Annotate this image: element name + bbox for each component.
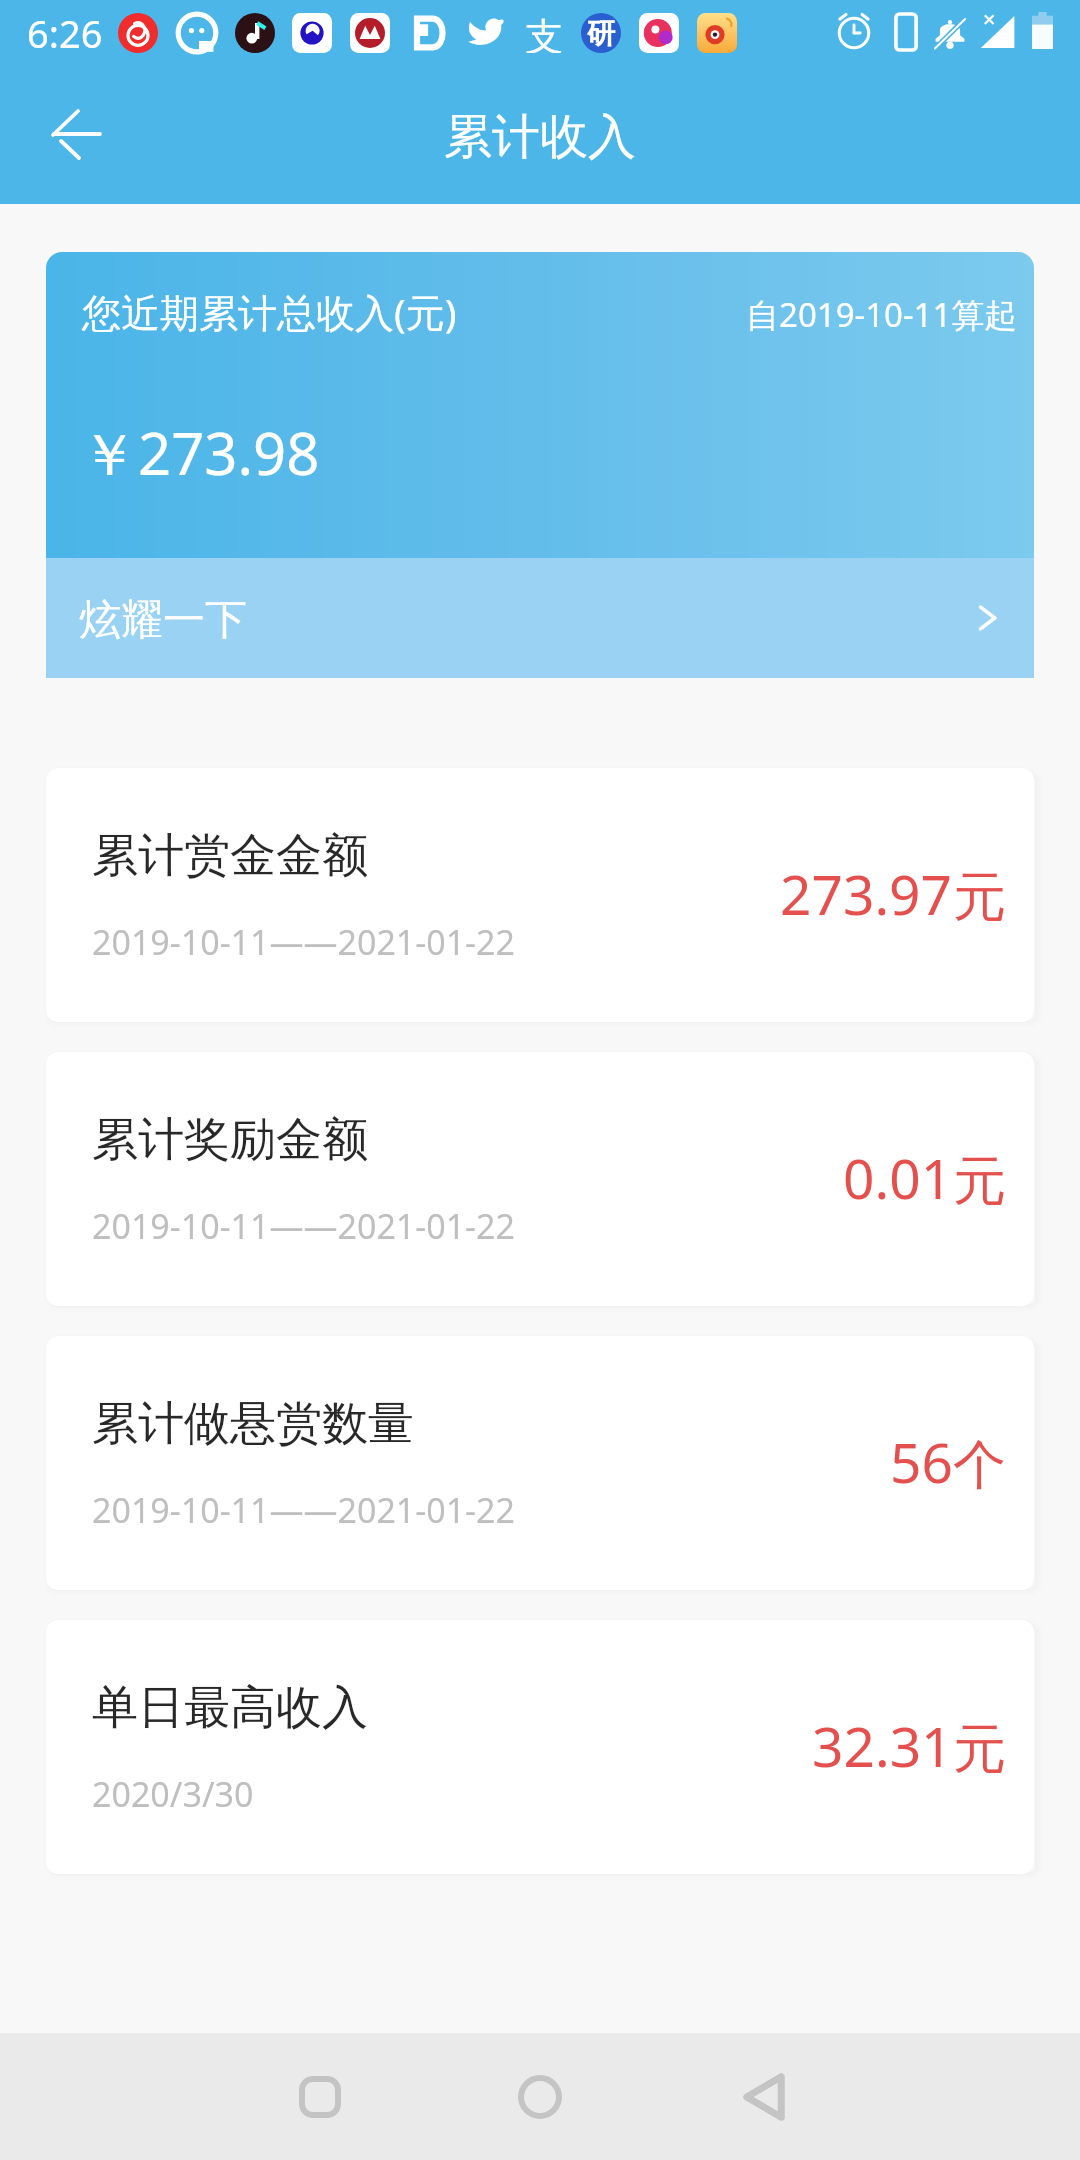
- staticText: ￥273.98: [80, 413, 320, 492]
- button[interactable]: Home: [430, 2033, 650, 2160]
- button[interactable]: Back: [0, 70, 146, 204]
- button[interactable]: 单日最高收入: [46, 1620, 1034, 1874]
- staticText: 0.01: [843, 1140, 953, 1215]
- button[interactable]: Back: [650, 2033, 870, 2160]
- staticText: 研: [587, 16, 615, 51]
- staticText: 炫耀一下: [79, 594, 247, 647]
- staticText: 2019-10-11——2021-01-22: [92, 1203, 515, 1249]
- staticText: 累计奖励金额: [92, 1111, 368, 1169]
- staticText: 累计赏金金额: [92, 827, 368, 885]
- staticText: 您近期累计总收入(元): [82, 285, 457, 338]
- button[interactable]: Recents: [210, 2033, 430, 2160]
- button[interactable]: 累计赏金金额: [46, 768, 1034, 1022]
- staticText: 元: [953, 1716, 1006, 1783]
- button[interactable]: 累计奖励金额: [46, 1052, 1034, 1306]
- staticText: 自2019-10-11算起: [746, 292, 1018, 337]
- staticText: 支: [525, 13, 563, 53]
- staticText: 2020/3/30: [92, 1771, 254, 1817]
- staticText: 32.31: [812, 1708, 953, 1783]
- staticText: 273.97: [780, 856, 953, 931]
- staticText: 累计做悬赏数量: [92, 1395, 414, 1453]
- staticText: 元: [953, 864, 1006, 931]
- staticText: 个: [953, 1432, 1006, 1499]
- staticText: 6:26: [27, 7, 103, 59]
- staticText: 单日最高收入: [92, 1679, 368, 1737]
- staticText: 2019-10-11——2021-01-22: [92, 1487, 515, 1533]
- staticText: 累计收入: [444, 107, 636, 167]
- staticText: 元: [953, 1148, 1006, 1215]
- staticText: 2019-10-11——2021-01-22: [92, 919, 515, 965]
- button[interactable]: 累计做悬赏数量: [46, 1336, 1034, 1590]
- staticText: 56: [890, 1424, 953, 1499]
- button[interactable]: 炫耀一下: [46, 558, 1034, 678]
